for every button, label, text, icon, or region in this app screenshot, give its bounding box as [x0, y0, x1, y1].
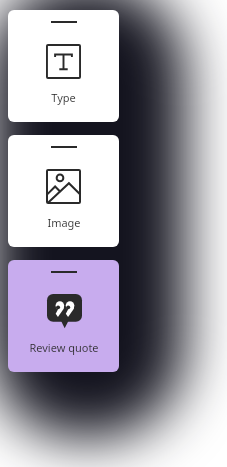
button[interactable]: Review quote	[8, 260, 119, 372]
staticText: Image	[47, 215, 81, 230]
staticText: Review quote	[29, 340, 99, 355]
button[interactable]: Image	[8, 135, 119, 247]
button[interactable]: Type	[8, 10, 119, 122]
staticText: Type	[51, 90, 76, 105]
